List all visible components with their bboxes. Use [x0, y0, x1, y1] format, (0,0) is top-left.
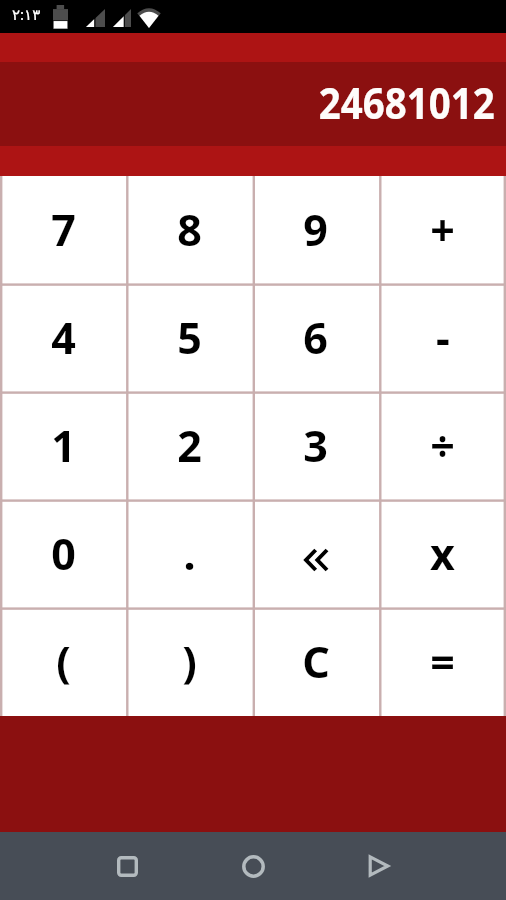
button[interactable]: 3: [252, 392, 379, 500]
button[interactable]: 9: [252, 176, 379, 284]
staticText: ÷: [430, 416, 455, 475]
button[interactable]: 2: [126, 392, 252, 500]
staticText: 4: [51, 308, 76, 367]
staticText: 24681012: [319, 73, 495, 132]
button[interactable]: -: [379, 284, 506, 392]
button[interactable]: 4: [0, 284, 126, 392]
staticText: 7: [51, 200, 76, 259]
button[interactable]: =: [379, 608, 506, 716]
button[interactable]: 0: [0, 500, 126, 608]
button[interactable]: .: [126, 500, 252, 608]
staticText: (: [56, 632, 71, 691]
button[interactable]: ÷: [379, 392, 506, 500]
staticText: C: [302, 632, 330, 691]
staticText: ٢:١٣: [12, 4, 41, 24]
button[interactable]: (: [0, 608, 126, 716]
staticText: 2: [177, 416, 202, 475]
staticText: 8: [177, 200, 202, 259]
button[interactable]: C: [252, 608, 379, 716]
button[interactable]: x: [379, 500, 506, 608]
staticText: =: [430, 632, 455, 691]
button[interactable]: 1: [0, 392, 126, 500]
staticText: +: [430, 200, 455, 259]
staticText: 1: [51, 416, 76, 475]
button[interactable]: 6: [252, 284, 379, 392]
staticText: ): [182, 632, 197, 691]
button[interactable]: Back: [352, 839, 406, 893]
staticText: x: [430, 524, 455, 583]
staticText: 9: [303, 200, 328, 259]
staticText: 5: [177, 308, 202, 367]
button[interactable]: ): [126, 608, 252, 716]
staticText: .: [183, 524, 196, 583]
staticText: 6: [303, 308, 328, 367]
button[interactable]: Recent apps: [100, 839, 154, 893]
button[interactable]: 5: [126, 284, 252, 392]
button[interactable]: Backspace: [252, 500, 379, 608]
button[interactable]: 7: [0, 176, 126, 284]
staticText: 0: [51, 524, 76, 583]
staticText: 3: [303, 416, 328, 475]
staticText: -: [436, 308, 450, 367]
button[interactable]: Home: [226, 839, 280, 893]
button[interactable]: 8: [126, 176, 252, 284]
button[interactable]: +: [379, 176, 506, 284]
